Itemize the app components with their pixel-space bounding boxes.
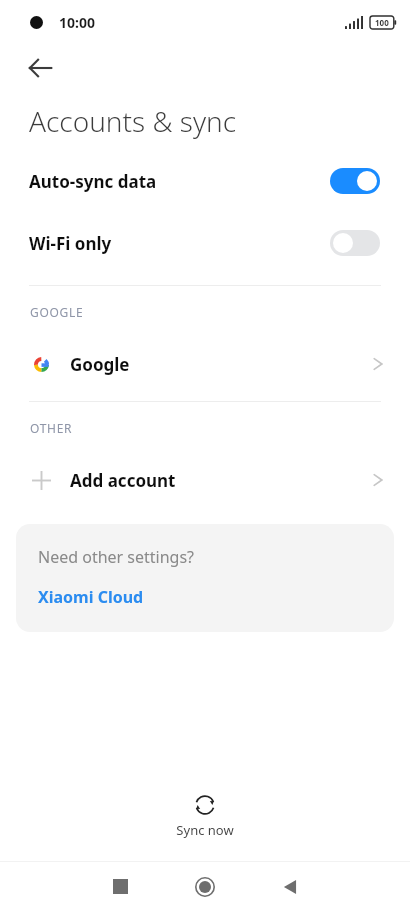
button[interactable]: Back (18, 46, 62, 90)
button[interactable]: Auto-sync data (0, 150, 410, 212)
staticText: Need other settings? (38, 546, 195, 568)
button[interactable]: Google (0, 338, 410, 390)
staticText: 100 (375, 17, 389, 28)
staticText: Google (70, 353, 372, 376)
button[interactable]: On (330, 168, 380, 194)
button[interactable]: Sync now (152, 788, 258, 845)
staticText: Accounts & sync (29, 102, 237, 140)
button[interactable]: Back (222, 862, 358, 911)
button[interactable]: Add account (0, 454, 410, 506)
staticText: OTHER (30, 420, 73, 436)
button[interactable]: Wi-Fi only (0, 212, 410, 274)
staticText: Auto-sync data (29, 170, 330, 193)
button[interactable]: Xiaomi Cloud (38, 586, 144, 608)
button[interactable]: Home (188, 862, 222, 911)
staticText: Sync now (176, 821, 234, 839)
staticText: Xiaomi Cloud (38, 586, 144, 608)
staticText: 10:00 (59, 13, 95, 32)
staticText: Wi-Fi only (29, 232, 330, 255)
staticText: GOOGLE (30, 304, 84, 320)
staticText: Add account (70, 469, 372, 492)
button[interactable]: Off (330, 230, 380, 256)
button[interactable]: Recents (52, 862, 188, 911)
